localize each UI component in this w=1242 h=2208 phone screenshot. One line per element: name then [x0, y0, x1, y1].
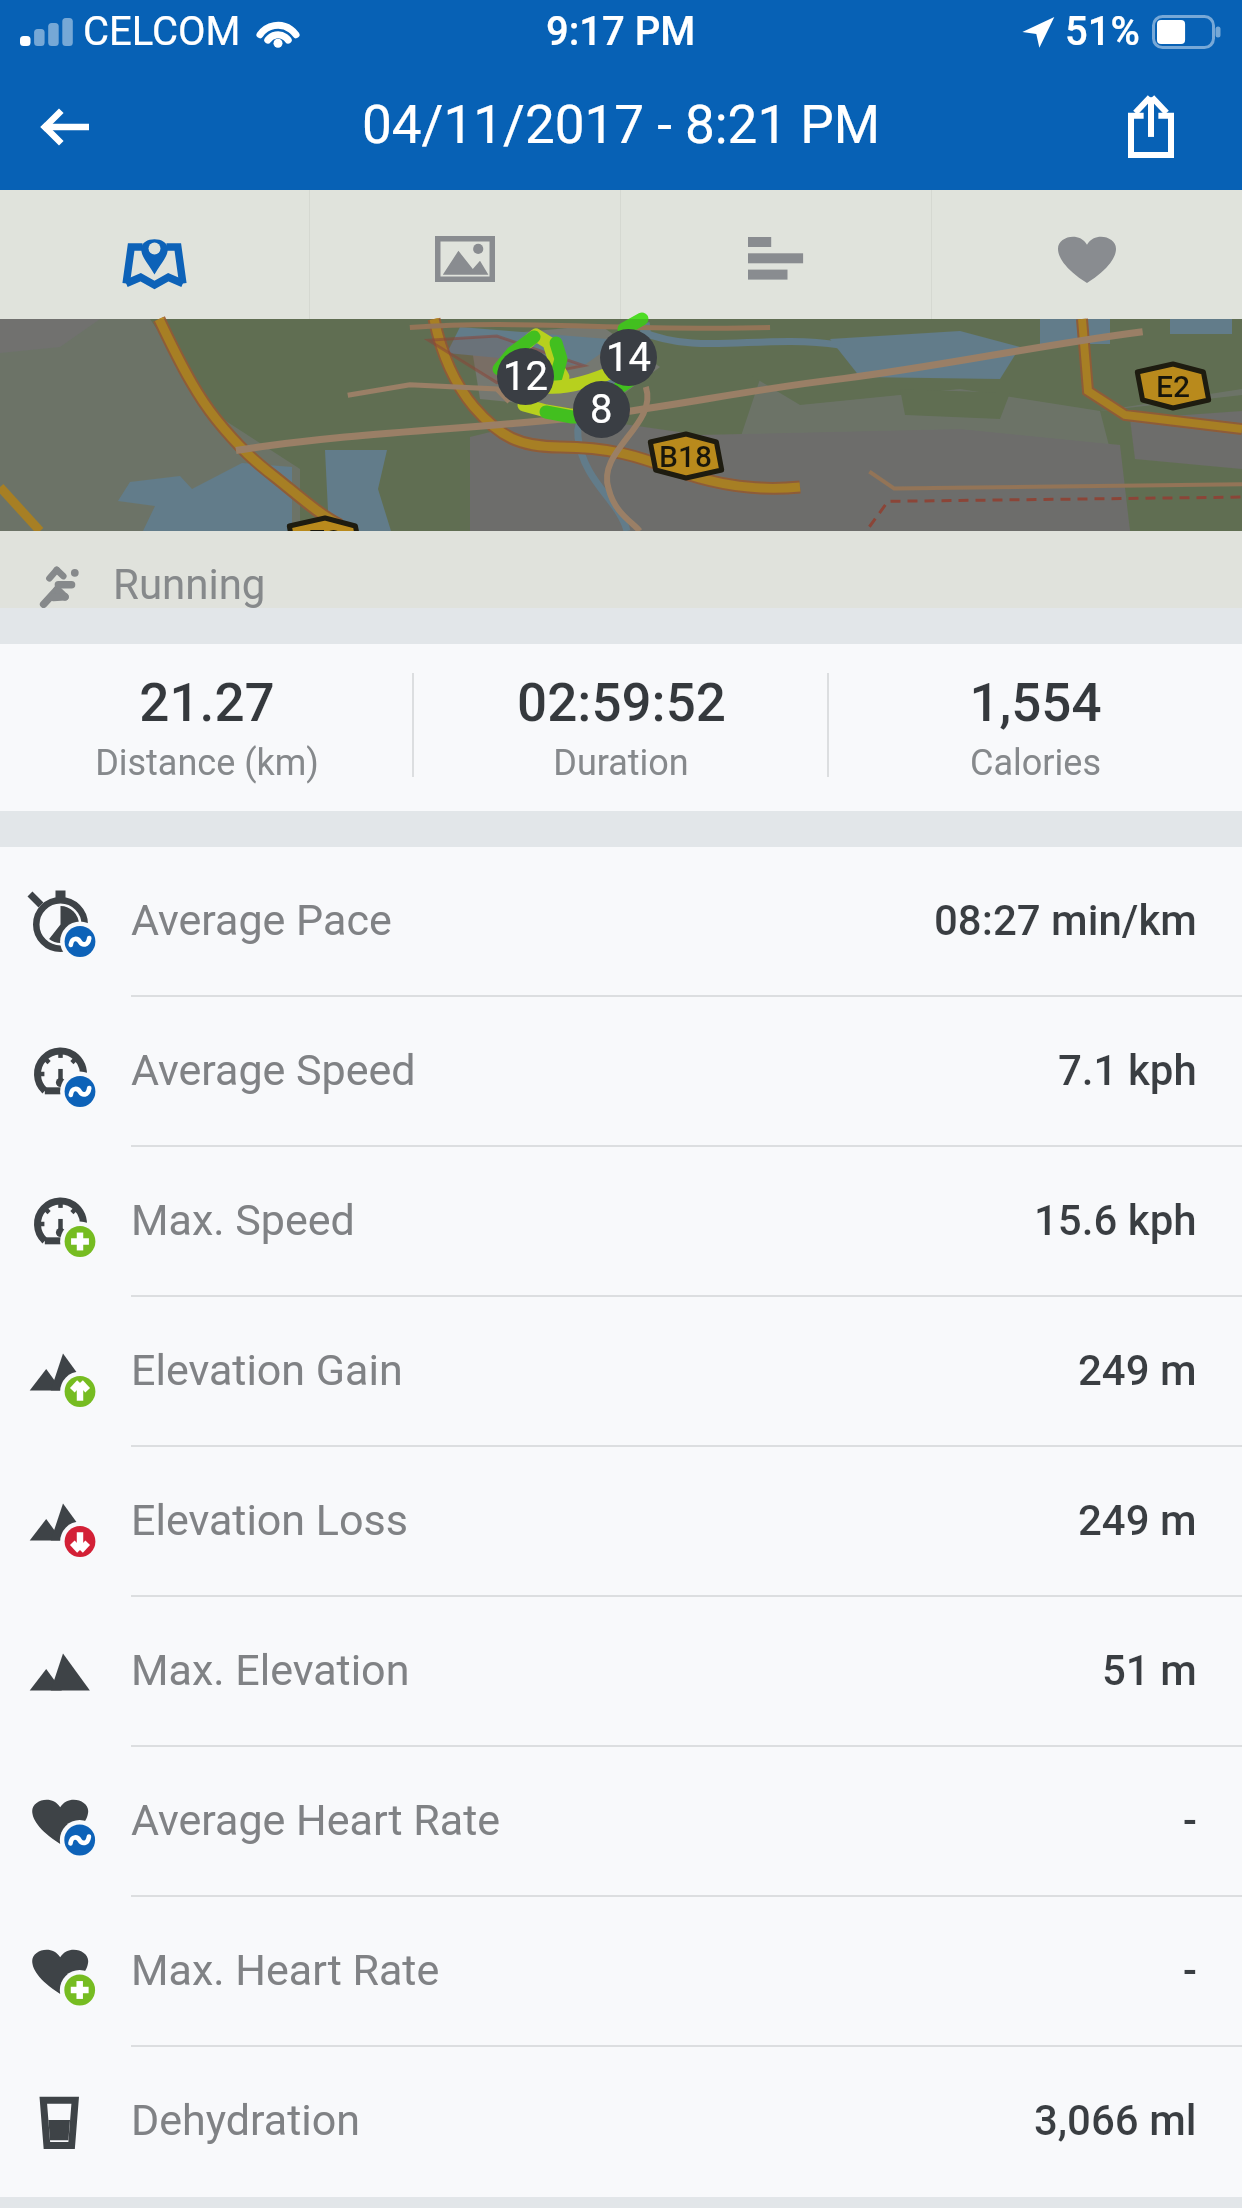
button[interactable]: Max. Heart Rate	[0, 1897, 1242, 2047]
staticText: Average Pace	[131, 895, 392, 945]
staticText: 51 m	[1102, 1646, 1197, 1695]
staticText: Dehydration	[131, 2095, 360, 2145]
staticText: Max. Speed	[131, 1195, 355, 1245]
staticText: Elevation Gain	[131, 1345, 403, 1395]
button[interactable]: Elevation Gain	[0, 1297, 1242, 1447]
staticText: Average Heart Rate	[131, 1795, 501, 1845]
staticText: 02:59:52	[517, 672, 726, 734]
button[interactable]: Elevation Loss	[0, 1447, 1242, 1597]
button[interactable]: Heart rate	[932, 190, 1242, 319]
staticText: 21.27	[139, 672, 275, 734]
staticText: 08:27 min/km	[934, 896, 1197, 945]
staticText: CELCOM	[83, 8, 241, 55]
staticText: Average Speed	[131, 1045, 416, 1095]
staticText: 8	[590, 386, 613, 433]
button[interactable]: Map	[0, 190, 309, 319]
staticText: Max. Elevation	[131, 1645, 410, 1695]
staticText: Running	[113, 560, 266, 609]
staticText: 51%	[1065, 8, 1140, 55]
staticText: Max. Heart Rate	[131, 1945, 440, 1995]
staticText: Duration	[553, 742, 689, 784]
staticText: 12	[503, 353, 548, 400]
button[interactable]: Share	[1091, 67, 1211, 187]
staticText: 14	[606, 334, 651, 381]
button[interactable]: Max. Speed	[0, 1147, 1242, 1297]
button[interactable]: Max. Elevation	[0, 1597, 1242, 1747]
staticText: E2	[1156, 369, 1191, 404]
button[interactable]: Average Pace	[0, 847, 1242, 997]
button[interactable]: Back	[6, 67, 126, 187]
staticText: Distance (km)	[95, 742, 319, 784]
staticText: 9:17 PM	[546, 8, 696, 55]
staticText: 15.6 kph	[1034, 1196, 1197, 1245]
staticText: 249 m	[1078, 1496, 1197, 1545]
button[interactable]: Dehydration	[0, 2047, 1242, 2197]
button[interactable]: Average Speed	[0, 997, 1242, 1147]
staticText: 7.1 kph	[1058, 1046, 1197, 1095]
staticText: 1,554	[969, 672, 1102, 734]
staticText: 249 m	[1078, 1346, 1197, 1395]
staticText: Calories	[970, 742, 1101, 784]
button[interactable]: Splits	[621, 190, 931, 319]
staticText: 04/11/2017 - 8:21 PM	[362, 94, 881, 156]
button[interactable]: Photos	[310, 190, 620, 319]
staticText: 3,066 ml	[1034, 2096, 1197, 2145]
staticText: E2	[308, 523, 343, 558]
staticText: B18	[659, 439, 713, 474]
staticText: -	[1183, 1796, 1197, 1845]
button[interactable]: Average Heart Rate	[0, 1747, 1242, 1897]
staticText: Elevation Loss	[131, 1495, 408, 1545]
staticText: -	[1183, 1946, 1197, 1995]
